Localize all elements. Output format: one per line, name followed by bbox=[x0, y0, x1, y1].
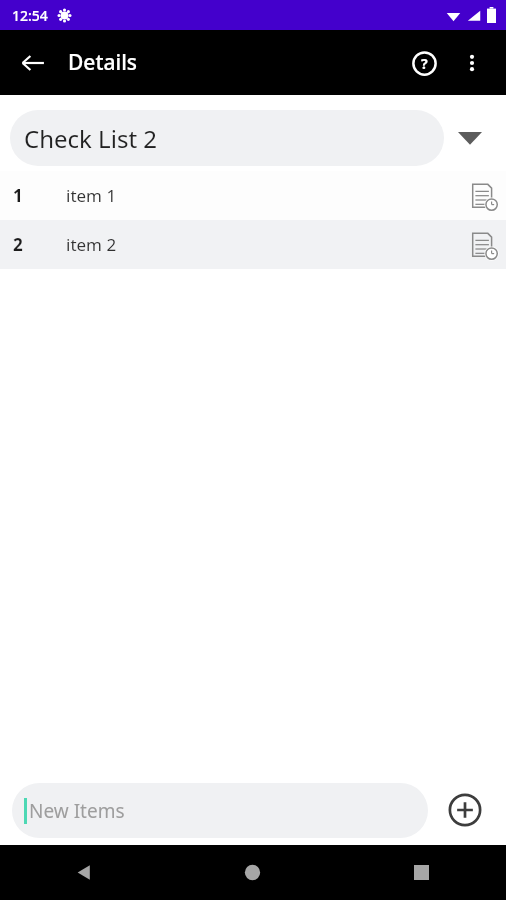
staticText: item 1 bbox=[66, 184, 117, 207]
staticText: 12:54 bbox=[12, 6, 48, 25]
button[interactable]: 2 bbox=[0, 220, 506, 269]
button[interactable]: Help bbox=[400, 39, 448, 87]
button[interactable]: Recent apps bbox=[337, 845, 506, 900]
button[interactable]: New Items bbox=[12, 783, 428, 838]
button[interactable]: Check List 2 bbox=[10, 110, 444, 166]
button[interactable]: 1 bbox=[0, 171, 506, 220]
button[interactable]: Add item bbox=[436, 781, 494, 839]
staticText: Details bbox=[68, 48, 138, 77]
button[interactable]: More options bbox=[448, 39, 496, 87]
button[interactable]: Open list selector bbox=[444, 112, 496, 164]
staticText: item 2 bbox=[66, 233, 117, 256]
staticText: New Items bbox=[29, 798, 125, 824]
staticText: ? bbox=[421, 54, 428, 73]
button[interactable]: Home bbox=[168, 845, 337, 900]
button[interactable]: Back bbox=[0, 845, 168, 900]
staticText: Check List 2 bbox=[24, 122, 158, 155]
button[interactable]: Set reminder bbox=[460, 173, 506, 219]
staticText: 1 bbox=[13, 184, 23, 207]
button[interactable]: Back bbox=[0, 50, 54, 76]
button[interactable]: Set reminder bbox=[460, 222, 506, 268]
staticText: 2 bbox=[13, 233, 23, 256]
